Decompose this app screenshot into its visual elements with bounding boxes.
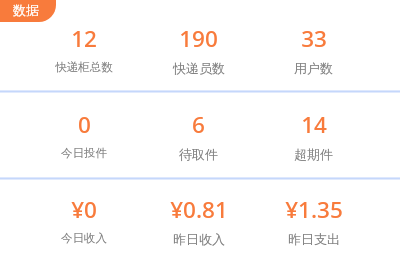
- staticText: 6: [192, 109, 205, 140]
- staticText: 昨日收入: [173, 231, 225, 247]
- staticText: 超期件: [294, 146, 333, 162]
- button[interactable]: ¥0: [27, 178, 141, 256]
- button[interactable]: 33: [256, 6, 371, 91]
- button[interactable]: 12: [27, 6, 141, 91]
- staticText: 14: [301, 109, 327, 140]
- staticText: ¥0: [71, 194, 97, 225]
- staticText: 快递员数: [173, 60, 225, 76]
- staticText: 昨日支出: [288, 231, 340, 247]
- staticText: 0: [78, 109, 91, 140]
- staticText: 190: [179, 23, 218, 54]
- button[interactable]: 数据: [0, 0, 56, 22]
- button[interactable]: 0: [27, 92, 141, 177]
- button[interactable]: ¥0.81: [141, 178, 256, 256]
- staticText: 快递柜总数: [55, 60, 113, 74]
- button[interactable]: 190: [141, 6, 256, 91]
- staticText: ¥1.35: [285, 194, 343, 225]
- button[interactable]: 14: [256, 92, 371, 177]
- staticText: 12: [71, 23, 97, 54]
- staticText: 用户数: [294, 60, 333, 76]
- staticText: 数据: [13, 2, 39, 18]
- staticText: ¥0.81: [170, 194, 228, 225]
- staticText: 待取件: [179, 146, 218, 162]
- staticText: 今日收入: [61, 231, 107, 245]
- staticText: 33: [301, 23, 327, 54]
- staticText: 今日投件: [61, 146, 107, 160]
- button[interactable]: 6: [141, 92, 256, 177]
- button[interactable]: ¥1.35: [256, 178, 371, 256]
